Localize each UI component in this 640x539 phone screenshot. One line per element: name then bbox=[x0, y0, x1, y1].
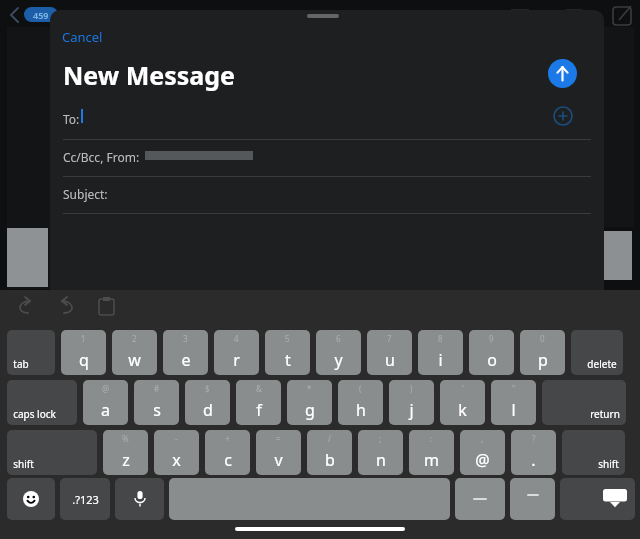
staticText: 0 bbox=[540, 333, 545, 344]
staticText: ( bbox=[359, 383, 362, 394]
staticText: @ bbox=[102, 383, 110, 394]
button[interactable]: Add contact bbox=[553, 106, 573, 126]
staticText: k bbox=[458, 399, 467, 421]
button[interactable]: Key bbox=[510, 478, 555, 520]
button[interactable]: tab bbox=[7, 330, 55, 375]
button[interactable]: Key bbox=[455, 478, 505, 520]
button[interactable]: = bbox=[256, 430, 301, 475]
staticText: e bbox=[181, 349, 191, 371]
staticText: 8 bbox=[438, 333, 443, 344]
button[interactable]: , bbox=[460, 430, 505, 475]
staticText: 2 bbox=[132, 333, 137, 344]
staticText: p bbox=[538, 349, 548, 371]
staticText: i bbox=[438, 349, 443, 371]
staticText: y bbox=[334, 349, 343, 371]
button[interactable]: 6 bbox=[316, 330, 361, 375]
staticText: z bbox=[122, 449, 130, 471]
staticText: o bbox=[487, 349, 497, 371]
staticText: 459 bbox=[33, 9, 49, 21]
staticText: a bbox=[101, 399, 110, 421]
button[interactable]: % bbox=[103, 430, 148, 475]
staticText: h bbox=[356, 399, 366, 421]
staticText: @ bbox=[475, 449, 490, 471]
button[interactable]: Send bbox=[548, 59, 577, 88]
button[interactable]: $ bbox=[185, 380, 230, 425]
staticText: delete bbox=[587, 357, 617, 371]
staticText: return bbox=[590, 407, 620, 421]
staticText: 4 bbox=[234, 333, 239, 344]
button[interactable]: 4 bbox=[214, 330, 259, 375]
staticText: b bbox=[325, 449, 335, 471]
button[interactable]: shift bbox=[7, 430, 97, 475]
button[interactable]: Key bbox=[560, 478, 635, 520]
staticText: 3 bbox=[183, 333, 188, 344]
staticText: Subject: bbox=[63, 186, 108, 202]
staticText: ? bbox=[532, 433, 536, 444]
staticText: % bbox=[122, 433, 129, 444]
staticText: caps lock bbox=[13, 407, 56, 421]
button[interactable]: Key bbox=[7, 478, 55, 520]
staticText: " bbox=[512, 383, 516, 394]
button[interactable]: # bbox=[134, 380, 179, 425]
staticText: t bbox=[285, 349, 291, 371]
button[interactable]: + bbox=[205, 430, 250, 475]
staticText: # bbox=[154, 383, 160, 394]
staticText: Cc/Bcc, From: bbox=[63, 149, 140, 165]
button[interactable]: return bbox=[542, 380, 626, 425]
button[interactable]: delete bbox=[571, 330, 623, 375]
button[interactable]: Cancel bbox=[62, 28, 103, 46]
staticText: x bbox=[172, 449, 181, 471]
button[interactable]: .?123 bbox=[60, 478, 110, 520]
button[interactable]: 3 bbox=[163, 330, 208, 375]
staticText: & bbox=[256, 383, 262, 394]
button[interactable]: 5 bbox=[265, 330, 310, 375]
staticText: ' bbox=[462, 383, 464, 394]
button[interactable]: Key bbox=[115, 478, 164, 520]
button[interactable]: & bbox=[236, 380, 281, 425]
button[interactable]: Subject: bbox=[50, 177, 604, 213]
staticText: . bbox=[531, 449, 536, 471]
button[interactable]: 7 bbox=[367, 330, 412, 375]
button[interactable] bbox=[169, 478, 450, 520]
button[interactable]: * bbox=[287, 380, 332, 425]
button[interactable]: shift bbox=[562, 430, 625, 475]
staticText: g bbox=[305, 399, 315, 421]
button[interactable]: 1 bbox=[61, 330, 106, 375]
staticText: 6 bbox=[336, 333, 341, 344]
staticText: 1 bbox=[81, 333, 86, 344]
button[interactable]: 8 bbox=[418, 330, 463, 375]
staticText: d bbox=[203, 399, 213, 421]
staticText: shift bbox=[598, 457, 619, 471]
staticText: 7 bbox=[387, 333, 392, 344]
staticText: * bbox=[307, 383, 312, 394]
button[interactable]: 9 bbox=[469, 330, 514, 375]
staticText: s bbox=[153, 399, 161, 421]
staticText: 9 bbox=[489, 333, 494, 344]
button[interactable]: @ bbox=[83, 380, 128, 425]
button[interactable]: 2 bbox=[112, 330, 157, 375]
staticText: m bbox=[424, 449, 439, 471]
button[interactable]: : bbox=[409, 430, 454, 475]
staticText: f bbox=[256, 399, 262, 421]
staticText: c bbox=[224, 449, 232, 471]
button[interactable]: ; bbox=[358, 430, 403, 475]
staticText: u bbox=[385, 349, 395, 371]
staticText: .?123 bbox=[72, 492, 99, 507]
staticText: r bbox=[233, 349, 240, 371]
staticText: $ bbox=[205, 383, 210, 394]
staticText: , bbox=[481, 433, 484, 444]
button[interactable]: / bbox=[307, 430, 352, 475]
button[interactable]: ) bbox=[389, 380, 434, 425]
staticText: n bbox=[376, 449, 386, 471]
staticText: tab bbox=[13, 357, 29, 371]
staticText: - bbox=[175, 433, 178, 444]
button[interactable]: Cc/Bcc, From: bbox=[50, 140, 604, 176]
button[interactable]: ? bbox=[511, 430, 556, 475]
button[interactable]: " bbox=[491, 380, 536, 425]
button[interactable]: - bbox=[154, 430, 199, 475]
button[interactable]: caps lock bbox=[7, 380, 77, 425]
button[interactable]: ( bbox=[338, 380, 383, 425]
staticText: w bbox=[128, 349, 141, 371]
button[interactable]: ' bbox=[440, 380, 485, 425]
button[interactable]: 0 bbox=[520, 330, 565, 375]
